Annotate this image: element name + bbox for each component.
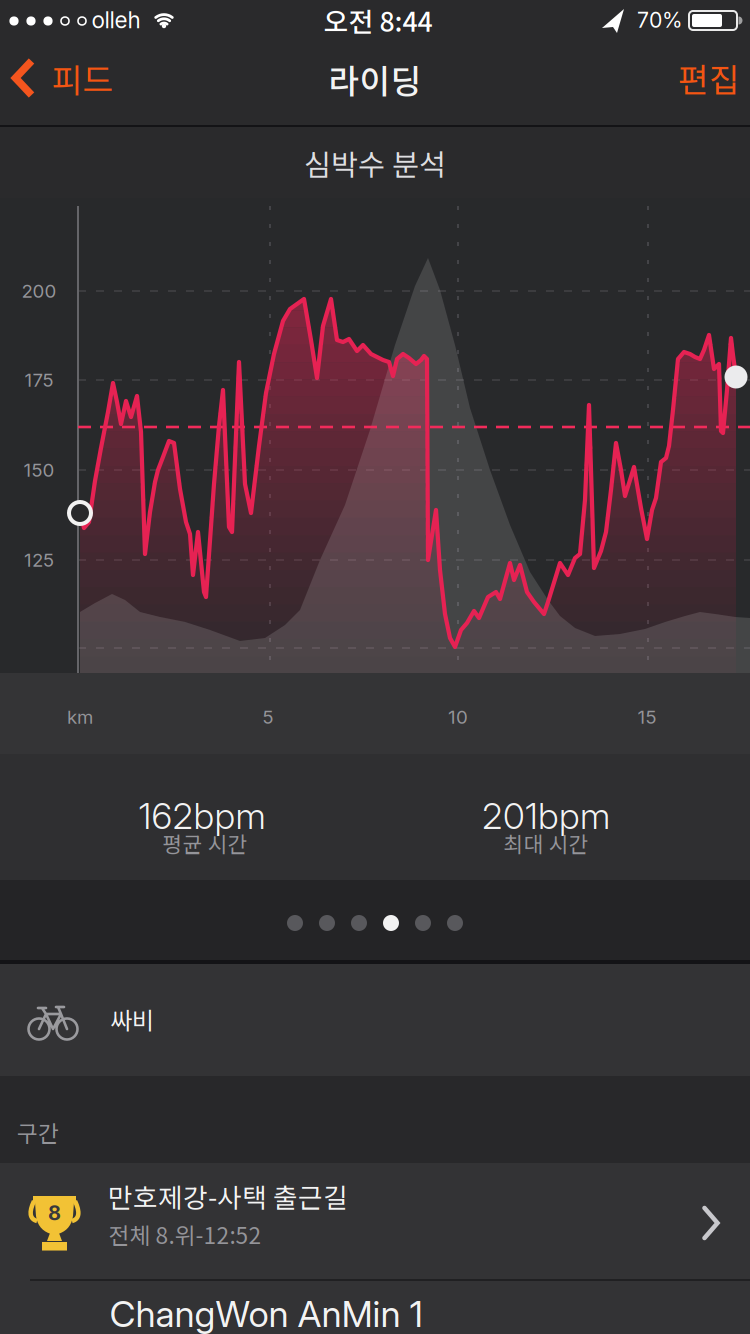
staticText: 싸비 (110, 1002, 154, 1036)
staticText: olleh (91, 6, 140, 34)
staticText: 오전 8:44 (323, 1, 432, 39)
staticText: 150 (23, 459, 54, 481)
staticText: km (67, 706, 93, 728)
staticText: 175 (24, 369, 53, 391)
staticText: 200 (21, 280, 56, 302)
button[interactable]: 싸비 (0, 964, 750, 1076)
staticText: 전체 8.위-12:52 (108, 1218, 261, 1250)
staticText: 15 (637, 706, 656, 728)
staticText: 라이딩 (328, 55, 421, 103)
staticText: 162bpm (138, 794, 265, 838)
staticText: 10 (448, 706, 468, 728)
staticText: 201bpm (482, 794, 610, 838)
staticText: 5 (262, 706, 273, 728)
button[interactable]: 8 (0, 1163, 750, 1279)
staticText: 피드 (51, 54, 113, 102)
button[interactable]: ChangWon AnMin 1 (0, 1281, 750, 1334)
staticText: 8 (48, 1201, 61, 1225)
staticText: 최대 시간 (503, 828, 588, 858)
staticText: 평균 시간 (162, 828, 247, 858)
staticText: 만호제강-사택 출근길 (108, 1177, 348, 1215)
button[interactable]: 편집 (664, 35, 750, 120)
staticText: 125 (24, 549, 54, 571)
staticText: 심박수 분석 (304, 142, 446, 184)
staticText: 구간 (17, 1116, 59, 1148)
staticText: 편집 (678, 54, 740, 102)
staticText: 70% (637, 7, 683, 33)
button[interactable]: 피드 (0, 35, 123, 120)
staticText: ChangWon AnMin 1 (109, 1292, 422, 1334)
